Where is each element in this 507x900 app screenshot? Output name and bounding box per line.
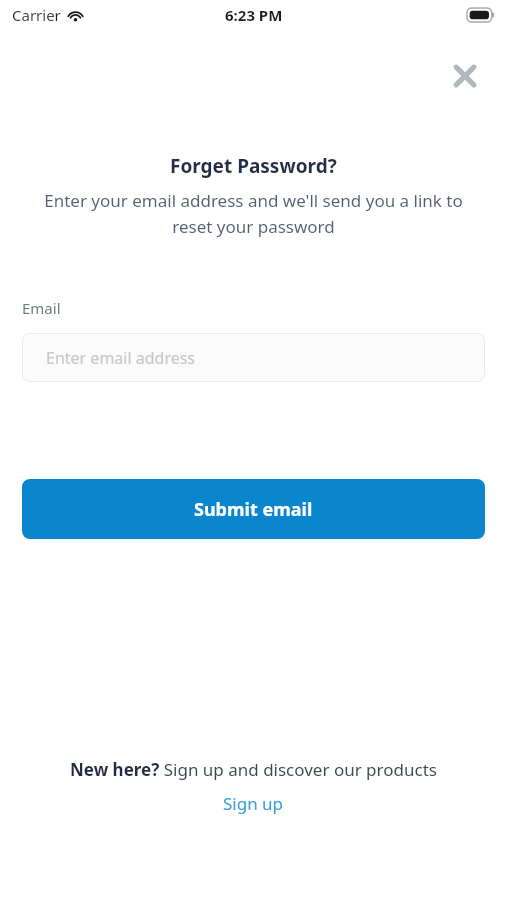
button[interactable]: Sign up xyxy=(217,790,290,817)
staticText: Submit email xyxy=(194,497,313,522)
staticText: 6:23 PM xyxy=(225,5,283,25)
button[interactable]: Enter email address xyxy=(22,333,485,382)
staticText: Forget Password? xyxy=(170,153,337,179)
staticText: Carrier xyxy=(12,5,61,25)
button[interactable]: Submit email xyxy=(22,479,485,539)
staticText: New here? Sign up and discover our produ… xyxy=(70,758,437,781)
button[interactable]: Close xyxy=(441,52,489,100)
staticText: Enter email address xyxy=(46,347,196,369)
staticText: Email xyxy=(22,298,61,318)
staticText: Enter your email address and we'll send … xyxy=(40,189,467,238)
button[interactable]: New here? Sign up and discover our produ… xyxy=(70,758,437,781)
staticText: Sign up xyxy=(223,792,284,815)
